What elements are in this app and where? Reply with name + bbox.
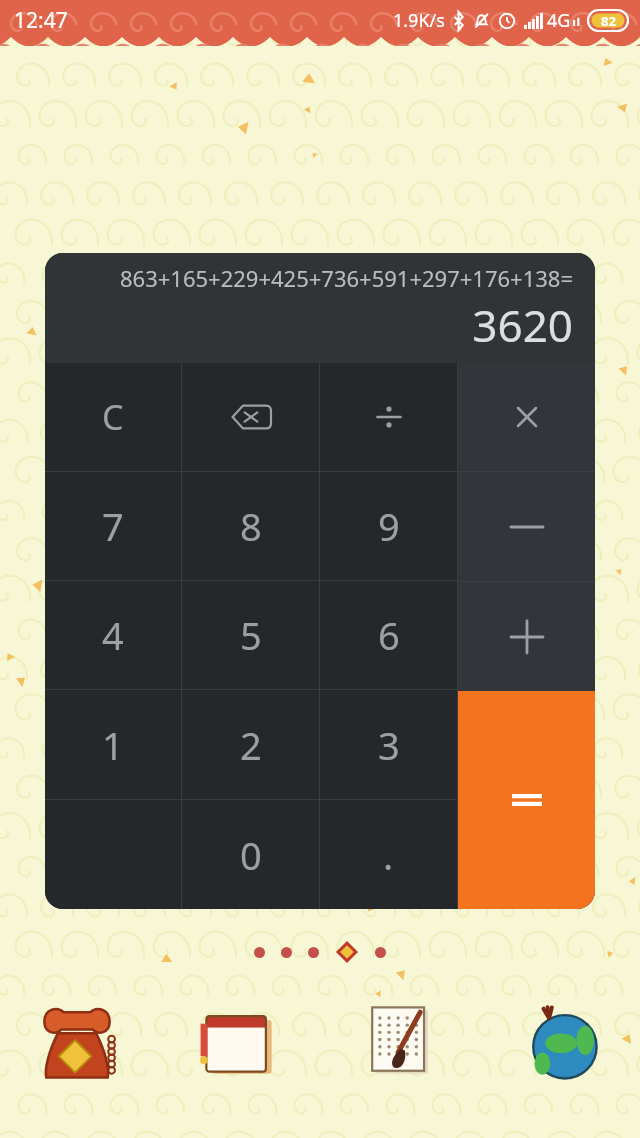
button[interactable]: 6 [320, 581, 457, 689]
staticText: 0 [240, 829, 262, 881]
button[interactable]: C [45, 363, 181, 471]
button[interactable]: 2 [182, 690, 319, 799]
staticText: 4G [547, 8, 571, 33]
button[interactable]: Backspace [182, 363, 319, 471]
button[interactable]: 5 [182, 581, 319, 689]
button[interactable]: Plus [458, 582, 595, 691]
button[interactable]: 9 [320, 472, 457, 580]
button[interactable]: Multiply [458, 363, 595, 471]
button[interactable]: 7 [45, 472, 181, 580]
button[interactable]: 3 [320, 690, 457, 799]
staticText: 6 [378, 609, 400, 661]
staticText: 9 [378, 500, 400, 552]
staticText: 12:47 [14, 6, 68, 35]
staticText: 3620 [472, 295, 573, 355]
staticText: 3 [378, 719, 400, 771]
button[interactable]: Minus [458, 472, 595, 581]
button[interactable]: 4 [45, 581, 181, 689]
button[interactable]: Calendar [184, 986, 294, 1096]
staticText: 5 [240, 609, 262, 661]
staticText: C [102, 394, 124, 440]
staticText: 4 [102, 609, 124, 661]
staticText: 2 [240, 719, 262, 771]
button[interactable]: 0 [182, 800, 319, 909]
staticText: 1.9K/s [393, 8, 445, 33]
button[interactable]: Equals [458, 691, 595, 909]
button[interactable]: Phone [22, 986, 132, 1096]
button[interactable]: 1 [45, 690, 181, 799]
button[interactable]: Notes [346, 986, 456, 1096]
staticText: 1 [102, 719, 124, 771]
staticText: 82 [601, 12, 616, 30]
staticText: 8 [240, 500, 262, 552]
button[interactable]: . [320, 800, 457, 909]
button[interactable]: 8 [182, 472, 319, 580]
staticText: . [383, 829, 394, 881]
button[interactable]: Browser [508, 986, 618, 1096]
staticText: 863+165+229+425+736+591+297+176+138= [119, 263, 573, 293]
button[interactable] [45, 800, 181, 909]
button[interactable]: Divide [320, 363, 457, 471]
staticText: 7 [102, 500, 124, 552]
